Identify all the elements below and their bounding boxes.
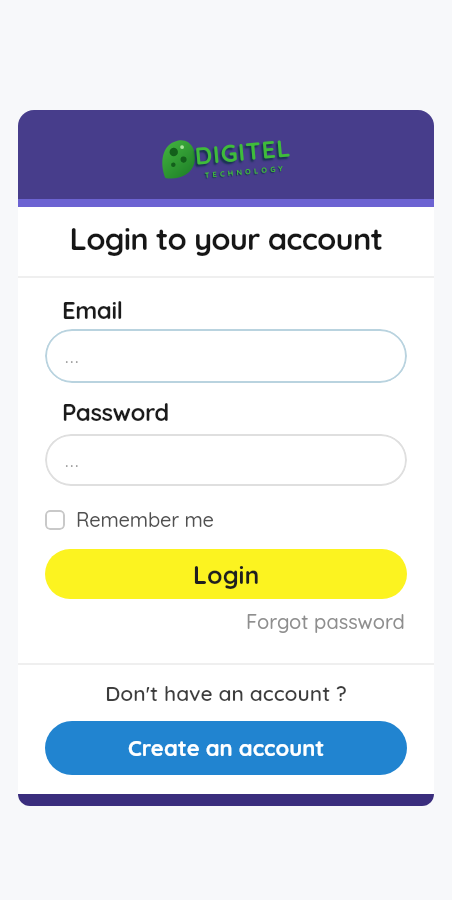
staticText: TECHNOLOGY <box>204 163 287 179</box>
staticText: Login <box>193 559 260 590</box>
staticText: Create an account <box>128 734 325 762</box>
button[interactable]: Remember me <box>45 507 214 532</box>
staticText: Login to your account <box>18 219 434 258</box>
button[interactable]: Forgot password <box>246 609 405 634</box>
staticText: ... <box>65 346 80 367</box>
staticText: Password <box>62 397 169 427</box>
staticText: Remember me <box>76 507 214 532</box>
button[interactable]: Login <box>45 549 407 599</box>
staticText: ... <box>65 450 80 471</box>
staticText: DIGITEL <box>194 132 293 171</box>
button[interactable]: ... <box>45 434 407 486</box>
staticText: Email <box>62 295 123 325</box>
staticText: Don't have an account ? <box>18 680 434 706</box>
button[interactable]: ... <box>45 329 407 383</box>
button[interactable]: Create an account <box>45 721 407 775</box>
